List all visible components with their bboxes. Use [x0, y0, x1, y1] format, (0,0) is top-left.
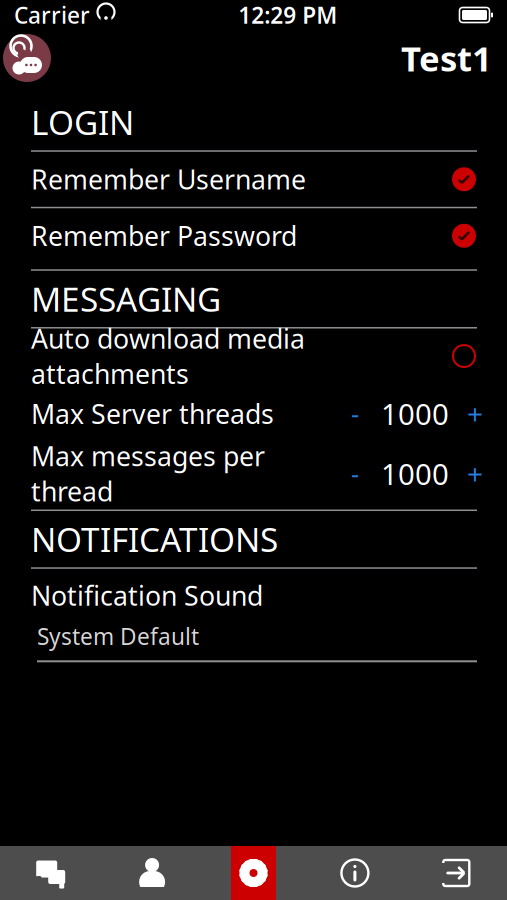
button[interactable]: Auto download media attachments [0, 328, 507, 383]
staticText: Test1 [401, 35, 492, 81]
staticText: - [351, 457, 359, 490]
button[interactable]: Sign out [406, 846, 507, 900]
button[interactable]: Remember Username [0, 152, 507, 207]
staticText: Carrier [14, 0, 90, 30]
staticText: Max Server threads [31, 396, 274, 431]
button[interactable]: Contacts [101, 846, 203, 900]
button[interactable]: App [2, 33, 52, 83]
staticText: Auto download media attachments [31, 321, 305, 391]
button[interactable]: Settings [203, 846, 304, 900]
button[interactable]: Decrease Max messages per thread [335, 451, 375, 495]
staticText: Notification Sound [31, 578, 263, 613]
staticText: Max messages per thread [31, 438, 265, 509]
staticText: MESSAGING [31, 277, 221, 321]
staticText: Remember Password [31, 218, 297, 253]
button[interactable]: Increase Max messages per thread [455, 451, 495, 495]
staticText: System Default [37, 621, 199, 651]
button[interactable]: Increase Max Server threads [455, 391, 495, 435]
button[interactable]: Remember Password [0, 208, 507, 263]
staticText: LOGIN [31, 100, 134, 144]
staticText: 1000 [381, 454, 449, 493]
staticText: Remember Username [31, 162, 306, 197]
staticText: - [351, 397, 359, 430]
staticText: 12:29 PM [238, 0, 337, 30]
button[interactable]: Notification Sound [0, 569, 507, 662]
staticText: 1000 [381, 394, 449, 433]
button[interactable]: Decrease Max Server threads [335, 391, 375, 435]
staticText: NOTIFICATIONS [31, 517, 278, 561]
staticText: + [467, 455, 483, 492]
button[interactable]: Info [304, 846, 406, 900]
button[interactable]: Messages [0, 846, 101, 900]
staticText: + [467, 395, 483, 432]
